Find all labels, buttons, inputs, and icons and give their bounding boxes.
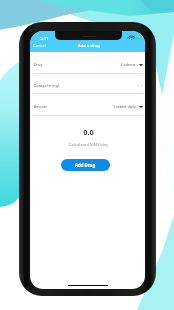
staticText: Cancel (33, 43, 47, 49)
staticText: Drug (34, 62, 43, 67)
staticText: 2:11 (40, 35, 49, 41)
staticText: Calculated MME/day (31, 142, 145, 148)
staticText: Add Drug (75, 162, 96, 168)
staticText: Codeine (121, 62, 136, 67)
button[interactable]: Add Drug (61, 159, 110, 171)
button[interactable]: Dosage (in mg) (30, 74, 145, 94)
staticText: 1 tablet daily (113, 104, 136, 109)
staticText: 0.0 (137, 83, 143, 88)
staticText: Dosage (in mg) (34, 83, 59, 88)
button[interactable]: Cancel (30, 41, 50, 51)
staticText: Amount (34, 104, 48, 109)
staticText: Add a drug (78, 43, 101, 49)
button[interactable]: Amount (30, 94, 145, 116)
staticText: 0.0 (31, 127, 145, 137)
button[interactable]: Drug (30, 52, 145, 74)
